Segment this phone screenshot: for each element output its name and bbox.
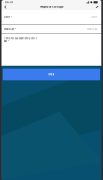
staticText: Nome xyxy=(91,16,97,18)
staticText: Enviar xyxy=(48,73,54,76)
staticText: Pesquisa de Satisfação xyxy=(40,6,63,8)
staticText: 09:41 xyxy=(5,1,13,4)
staticText: WhatsApp * xyxy=(4,28,16,30)
button[interactable]: Nome * xyxy=(1,10,101,24)
staticText: Nome * xyxy=(4,16,12,18)
staticText: WhatsApp xyxy=(87,28,97,30)
button[interactable]: Conte-nos sua experiência com o app * xyxy=(1,34,101,66)
button[interactable]: Back xyxy=(3,5,8,9)
button[interactable]: WhatsApp * xyxy=(1,25,101,33)
staticText: Conte-nos sua experiência com o app * xyxy=(4,37,37,43)
button[interactable]: Edit xyxy=(94,5,100,9)
button[interactable]: Enviar xyxy=(3,69,100,80)
